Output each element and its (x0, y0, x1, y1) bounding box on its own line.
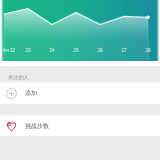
staticText: 挑战步数 (25, 122, 49, 130)
button[interactable]: 添加 (0, 82, 160, 104)
staticText: 27 (121, 47, 127, 53)
staticText: 24 (49, 47, 55, 53)
button[interactable]: 挑战步数 (0, 115, 160, 136)
staticText: 关注的人 (8, 74, 29, 81)
staticText: 26 (97, 47, 103, 53)
staticText: 28 (145, 47, 151, 53)
staticText: 25 (73, 47, 79, 53)
staticText: 添加 (25, 89, 37, 97)
staticText: 4月22 (3, 47, 15, 53)
staticText: 23 (25, 47, 31, 53)
